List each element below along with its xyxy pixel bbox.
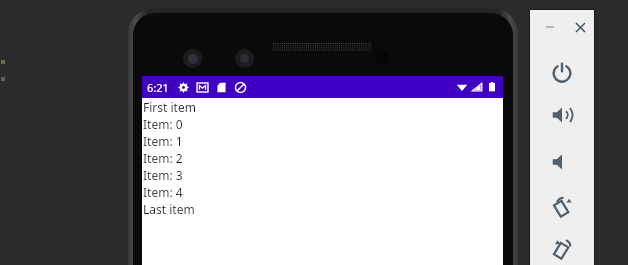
staticText: Item: 3 — [143, 167, 183, 183]
other: Signal — [471, 81, 483, 93]
button[interactable]: Rotate right — [543, 231, 581, 265]
button[interactable]: Power — [543, 54, 581, 90]
button[interactable]: Rotate left — [543, 189, 581, 225]
button[interactable]: Item: 2 — [142, 149, 503, 166]
staticText: Last item — [143, 201, 195, 217]
other: Do not disturb — [235, 82, 246, 93]
other: Settings — [178, 82, 189, 93]
button[interactable]: First item — [142, 98, 503, 115]
other: SD card — [216, 82, 227, 93]
staticText: Item: 4 — [143, 184, 183, 200]
staticText: 6:21 — [147, 80, 169, 95]
other: Mail — [197, 82, 208, 93]
button[interactable]: Item: 0 — [142, 115, 503, 132]
button[interactable]: Close — [569, 17, 591, 37]
button[interactable]: Last item — [142, 200, 503, 217]
other: Wi-Fi — [456, 81, 468, 93]
staticText: Item: 0 — [143, 116, 183, 132]
button[interactable]: Item: 1 — [142, 132, 503, 149]
button[interactable]: Item: 3 — [142, 166, 503, 183]
staticText: First item — [143, 99, 196, 115]
button[interactable]: Item: 4 — [142, 183, 503, 200]
staticText: Item: 2 — [143, 150, 183, 166]
button[interactable]: Volume up — [543, 97, 581, 133]
staticText: Item: 1 — [143, 133, 183, 149]
button[interactable]: Minimize — [539, 17, 561, 37]
button[interactable]: Volume down — [543, 144, 581, 180]
other: Battery — [486, 81, 498, 93]
